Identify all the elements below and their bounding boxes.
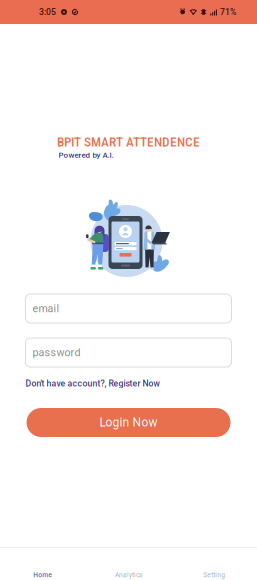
button[interactable]: Login Now xyxy=(26,408,230,437)
button[interactable]: email xyxy=(25,294,231,323)
button[interactable]: Analytics xyxy=(86,548,171,580)
staticText: Analytics xyxy=(115,571,142,579)
staticText: password xyxy=(32,346,80,359)
button[interactable]: Don't have account?, Register Now xyxy=(25,376,231,391)
staticText: Powered by A.I. xyxy=(58,150,113,160)
staticText: BPIT SMART ATTENDENCE xyxy=(57,134,200,150)
staticText: email xyxy=(32,302,59,315)
staticText: Login Now xyxy=(99,415,157,430)
button[interactable]: Setting xyxy=(171,548,257,580)
button[interactable]: password xyxy=(25,338,231,367)
staticText: Don't have account?, Register Now xyxy=(25,378,159,389)
staticText: 3:05 xyxy=(39,7,56,17)
staticText: 71% xyxy=(220,7,236,17)
staticText: Setting xyxy=(203,571,225,579)
button[interactable]: Home xyxy=(0,548,86,580)
staticText: Home xyxy=(33,571,52,579)
